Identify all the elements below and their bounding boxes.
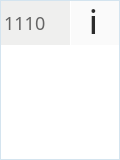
staticText: i (89, 0, 98, 44)
button[interactable]: 1110 (0, 0, 70, 45)
button[interactable]: Info (71, 0, 120, 45)
staticText: 1110 (4, 11, 46, 36)
